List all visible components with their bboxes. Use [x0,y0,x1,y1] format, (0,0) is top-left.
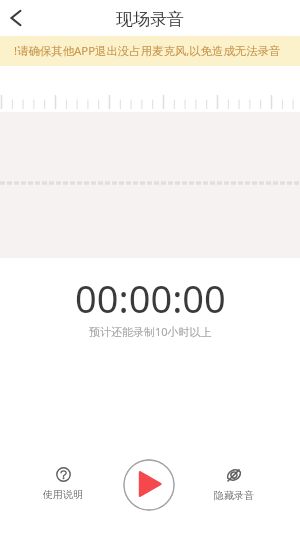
staticText: 现场录音 [116,9,184,30]
button[interactable]: 开始录音 [123,459,175,511]
staticText: !请确保其他APP退出没占用麦克风,以免造成无法录音 [14,43,281,59]
button[interactable]: 隐藏录音 [206,463,262,506]
staticText: 00:00:00 [75,272,226,324]
staticText: 预计还能录制10小时以上 [89,324,212,339]
staticText: 隐藏录音 [214,489,254,502]
button[interactable]: 使用说明 [35,463,91,505]
staticText: 使用说明 [43,488,83,501]
button[interactable]: 返回 [0,0,36,36]
